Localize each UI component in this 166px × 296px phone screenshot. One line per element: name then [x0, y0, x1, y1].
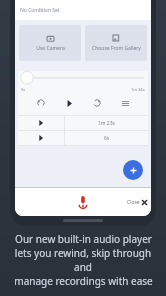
staticText: lets you rewind, skip through and — [6, 246, 160, 274]
staticText: Close — [127, 199, 140, 206]
staticText: 1m 23s — [98, 120, 115, 127]
button[interactable]: Playlist — [118, 96, 132, 110]
staticText: 0s — [21, 87, 26, 92]
button[interactable]: Use Camera — [19, 25, 81, 61]
button[interactable]: Add recording — [123, 160, 143, 180]
button[interactable]: Record — [72, 191, 94, 213]
staticText: No Condition Set — [20, 7, 60, 14]
button[interactable] — [18, 71, 148, 87]
staticText: 1m 34s — [131, 87, 145, 92]
button[interactable]: Play — [62, 96, 76, 110]
button[interactable]: Choose From Gallery — [85, 25, 147, 61]
staticText: Use Camera — [36, 45, 65, 52]
staticText: manage recordings with ease — [14, 274, 153, 288]
staticText: Choose From Gallery — [92, 45, 141, 52]
button[interactable]: Close — [127, 199, 147, 206]
button[interactable]: 6s — [18, 131, 148, 145]
button[interactable]: Forward 5 seconds — [90, 96, 104, 110]
staticText: Our new built-in audio player — [15, 232, 152, 246]
button[interactable]: Rewind 5 seconds — [34, 96, 48, 110]
button[interactable]: 1m 23s — [18, 116, 148, 130]
staticText: 6s — [104, 135, 110, 142]
